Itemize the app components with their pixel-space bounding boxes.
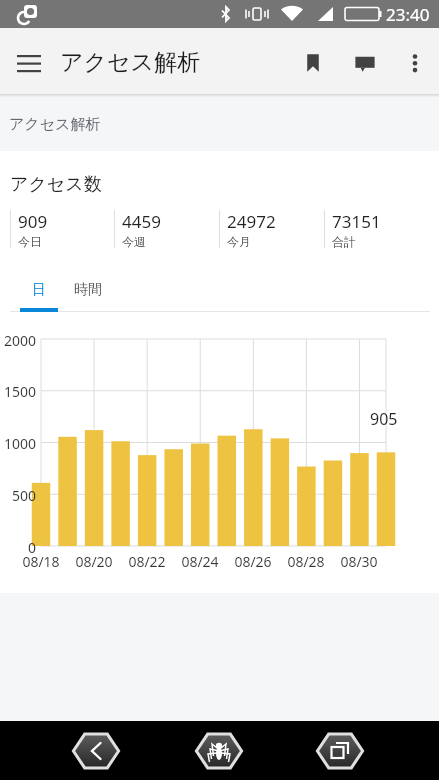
staticText: 4459 <box>122 210 161 233</box>
staticText: 1000 <box>0 434 36 453</box>
staticText: 今日 <box>18 234 42 248</box>
staticText: 時間 <box>74 281 102 299</box>
button[interactable]: 時間 <box>58 268 118 312</box>
button[interactable]: Comments <box>339 28 391 97</box>
staticText: 73151 <box>332 210 381 233</box>
staticText: 日 <box>32 281 46 299</box>
staticText: 1500 <box>0 382 36 401</box>
staticText: 08/20 <box>69 552 119 571</box>
staticText: アクセス解析 <box>9 115 101 134</box>
button[interactable]: Recent apps <box>314 729 366 773</box>
button[interactable]: Home <box>193 729 245 773</box>
staticText: 今月 <box>227 234 251 248</box>
staticText: 24972 <box>227 210 276 233</box>
staticText: 909 <box>18 210 48 233</box>
button[interactable]: Back <box>70 729 122 773</box>
staticText: 08/24 <box>175 552 225 571</box>
staticText: 23:40 <box>386 3 430 26</box>
button[interactable]: Bookmark <box>287 28 339 97</box>
staticText: アクセス解析 <box>60 48 201 77</box>
staticText: 08/28 <box>281 552 331 571</box>
staticText: 08/18 <box>16 552 66 571</box>
staticText: 合計 <box>332 234 356 248</box>
staticText: 08/26 <box>228 552 278 571</box>
staticText: 今週 <box>122 234 146 248</box>
staticText: 0 <box>0 538 36 557</box>
staticText: 905 <box>370 408 398 430</box>
staticText: 2000 <box>0 331 36 350</box>
button[interactable]: More options <box>391 28 439 97</box>
button[interactable]: 日 <box>20 268 58 312</box>
staticText: 500 <box>0 486 36 505</box>
staticText: 08/22 <box>122 552 172 571</box>
staticText: 08/30 <box>334 552 384 571</box>
staticText: アクセス数 <box>10 173 102 196</box>
button[interactable]: Navigation menu <box>0 34 58 92</box>
